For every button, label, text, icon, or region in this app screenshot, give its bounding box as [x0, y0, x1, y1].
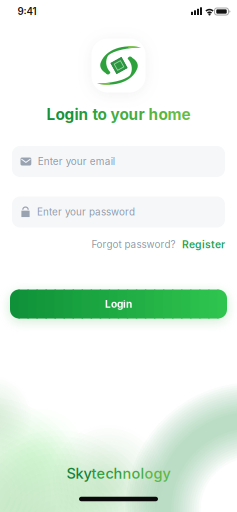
staticText: 9:41: [17, 6, 36, 17]
button[interactable]: Forgot password?: [91, 238, 175, 250]
staticText: your: [110, 105, 148, 124]
staticText: Sky: [66, 465, 91, 482]
button[interactable]: Enter your email: [12, 146, 225, 177]
staticText: nol: [122, 465, 144, 482]
button[interactable]: Register: [182, 238, 225, 251]
button[interactable]: Enter your password: [12, 196, 225, 227]
staticText: Enter your email: [38, 155, 115, 167]
staticText: Register: [182, 238, 225, 251]
staticText: me: [167, 105, 190, 124]
staticText: ogy: [144, 465, 170, 482]
staticText: Login: [105, 298, 132, 310]
staticText: Forgot password?: [91, 238, 175, 250]
button[interactable]: Login: [10, 289, 227, 318]
staticText: Enter your password: [37, 206, 135, 218]
staticText: tech: [91, 465, 122, 482]
staticText: Log: [46, 105, 74, 124]
staticText: in: [74, 105, 92, 124]
staticText: ho: [148, 105, 167, 124]
staticText: to: [92, 105, 110, 124]
